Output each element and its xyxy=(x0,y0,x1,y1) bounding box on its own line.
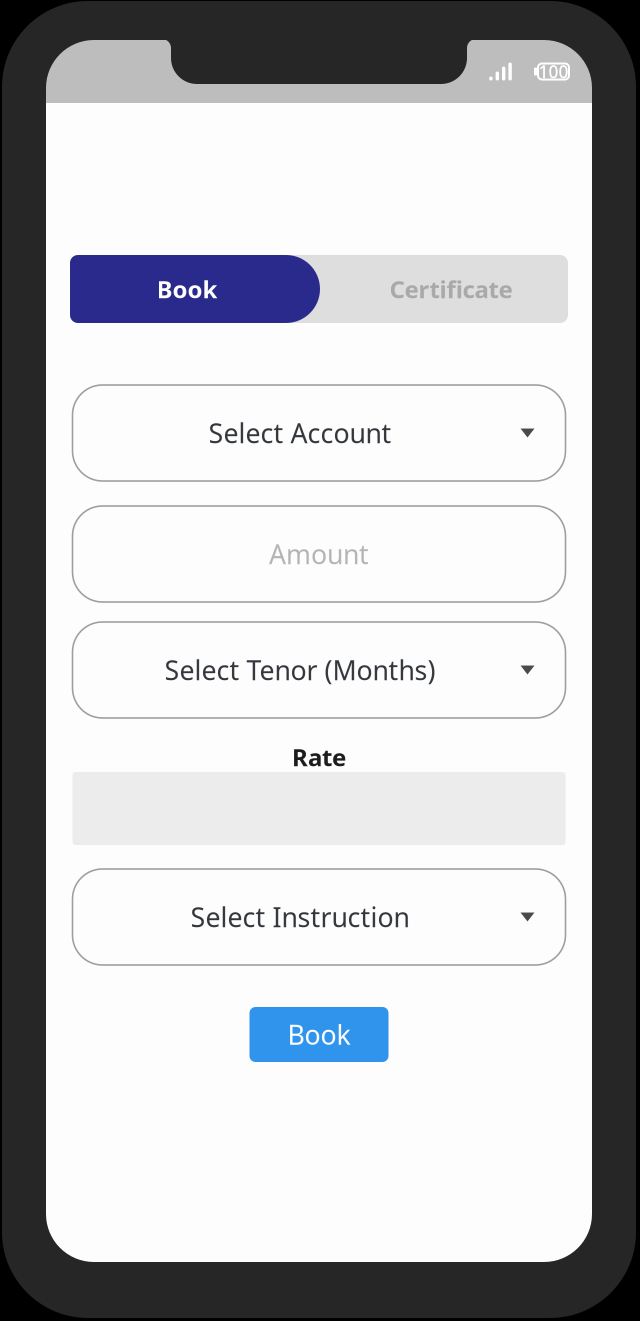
staticText: Select Tenor (Months) xyxy=(164,652,435,688)
staticText: Book xyxy=(156,273,217,305)
button[interactable]: Book xyxy=(70,255,320,323)
button[interactable]: Select Tenor (Months) xyxy=(72,622,565,718)
staticText: Select Instruction xyxy=(190,899,409,935)
button[interactable]: Select Account xyxy=(72,385,565,481)
staticText: Certificate xyxy=(389,273,512,305)
staticText: 100 xyxy=(538,60,568,83)
staticText: Book xyxy=(287,1017,350,1052)
staticText: Rate xyxy=(292,741,346,773)
button[interactable]: Select Instruction xyxy=(72,869,565,965)
staticText: Select Account xyxy=(208,415,391,451)
button[interactable]: Certificate xyxy=(320,255,568,323)
staticText: Amount xyxy=(269,536,369,572)
button[interactable]: Book xyxy=(249,1007,388,1062)
button[interactable]: Amount xyxy=(72,506,565,602)
